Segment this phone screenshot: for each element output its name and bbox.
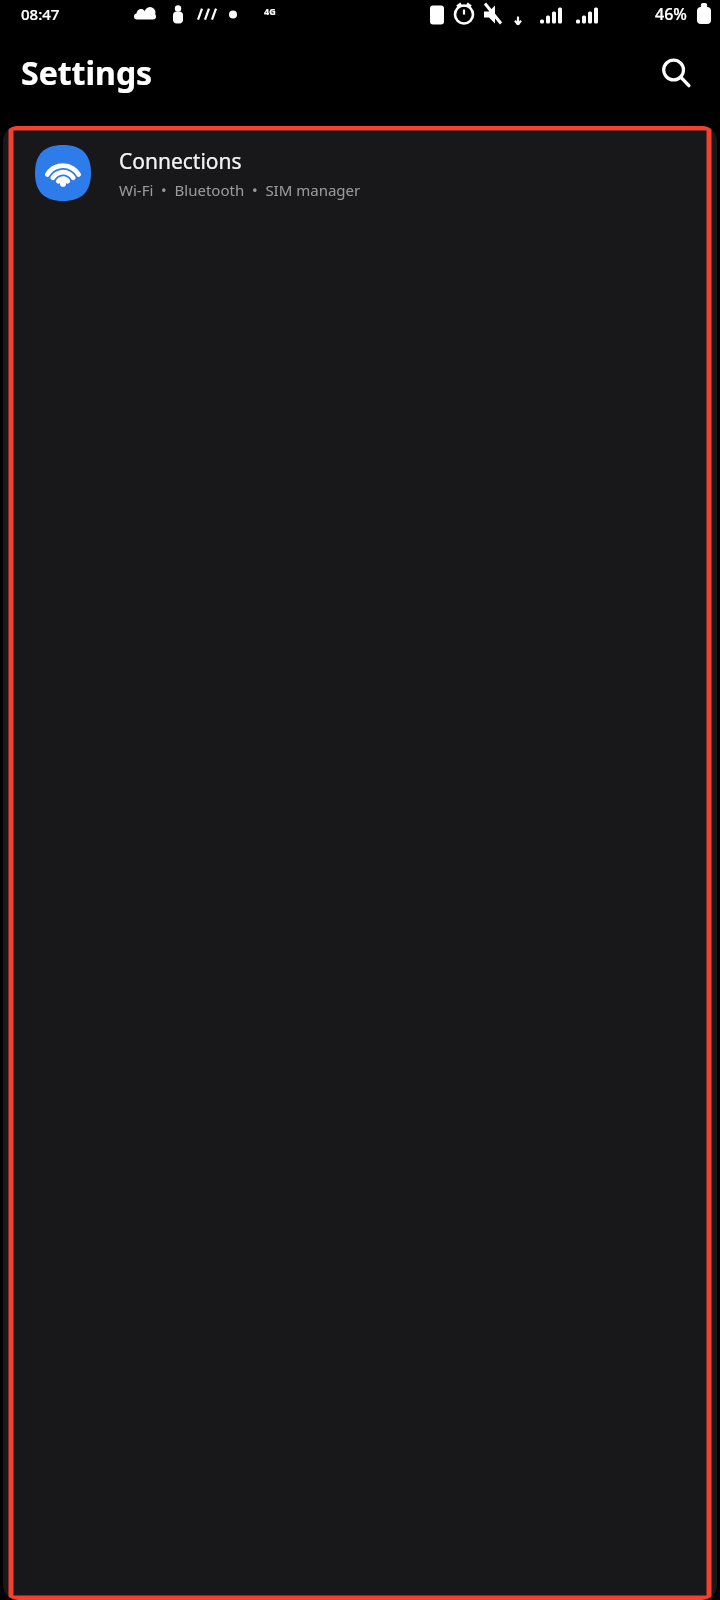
staticText: Connections <box>119 147 242 176</box>
staticText: 46% <box>655 3 687 25</box>
staticText: Settings <box>21 51 153 95</box>
staticText: Wi-Fi • Bluetooth • SIM manager <box>119 180 361 200</box>
staticText: 08:47 <box>21 4 60 24</box>
button[interactable]: Connections <box>11 128 709 218</box>
button[interactable]: Search <box>650 47 702 99</box>
staticText: 4G <box>264 5 276 17</box>
